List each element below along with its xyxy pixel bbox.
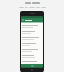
button[interactable] [22, 24, 42, 30]
button[interactable]: Menu [21, 18, 43, 22]
button[interactable] [22, 54, 42, 60]
button[interactable] [22, 30, 42, 36]
button[interactable] [22, 60, 42, 63]
button[interactable] [22, 42, 42, 48]
button[interactable] [0, 2, 64, 4]
button[interactable] [22, 48, 42, 54]
button[interactable] [22, 36, 42, 42]
button[interactable]: Bottom navigation [21, 64, 43, 67]
